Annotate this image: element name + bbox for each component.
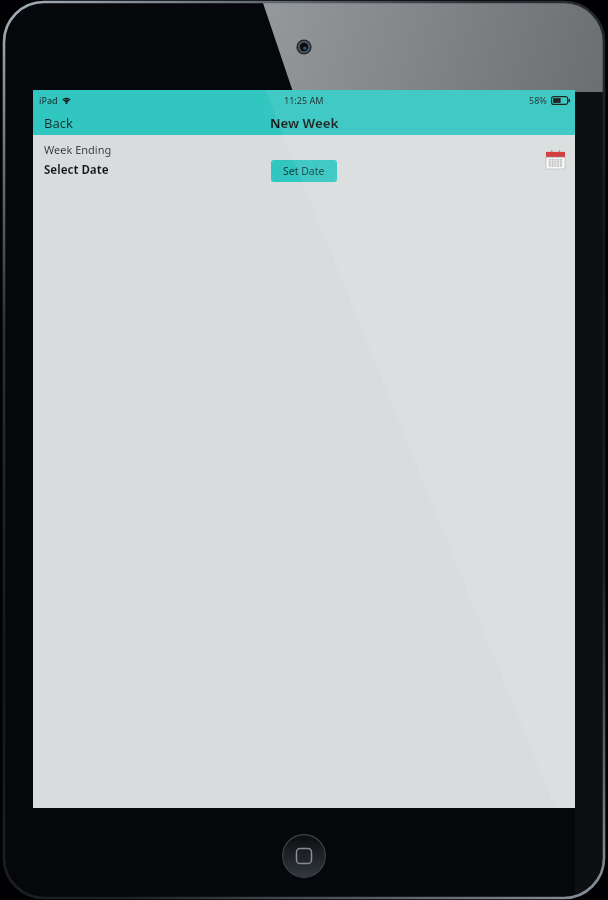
staticText: 11:25 AM (284, 94, 324, 106)
button[interactable]: Back (33, 110, 84, 135)
staticText: Set Date (283, 164, 325, 178)
staticText: Week Ending (44, 142, 112, 157)
staticText: Select Date (44, 162, 109, 178)
staticText: 58% (529, 94, 547, 106)
button[interactable]: Open calendar (544, 148, 566, 170)
button[interactable]: Set Date (271, 160, 337, 182)
staticText: Back (44, 114, 73, 132)
staticText: New Week (270, 114, 339, 132)
staticText: iPad (39, 94, 58, 106)
